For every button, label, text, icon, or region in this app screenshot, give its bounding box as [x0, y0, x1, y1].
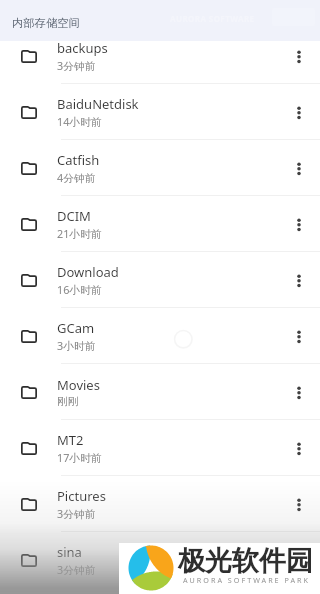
staticText: MT2 [57, 431, 84, 449]
button[interactable]: Catfish [0, 140, 320, 196]
staticText: Movies [57, 376, 100, 394]
button[interactable]: BaiduNetdisk [0, 84, 320, 140]
staticText: sina [57, 543, 82, 561]
button[interactable]: More options [277, 364, 320, 420]
staticText: 极光软件园 [178, 544, 313, 578]
button[interactable]: More options [277, 532, 320, 588]
button[interactable]: More options [277, 28, 320, 84]
button[interactable]: sina [0, 532, 320, 588]
button[interactable]: More options [277, 252, 320, 308]
staticText: 16小时前 [57, 282, 102, 297]
button[interactable]: More options [277, 84, 320, 140]
staticText: AURORA SOFTWARE PARK [183, 575, 310, 585]
staticText: 3小时前 [57, 338, 96, 353]
staticText: 4分钟前 [57, 170, 96, 185]
staticText: DCIM [57, 207, 91, 225]
staticText: GCam [57, 319, 95, 337]
button[interactable]: backups [0, 28, 320, 84]
button[interactable]: Download [0, 252, 320, 308]
staticText: 3分钟前 [57, 506, 96, 521]
button[interactable]: More options [277, 420, 320, 476]
button[interactable]: DCIM [0, 196, 320, 252]
button[interactable]: Movies [0, 364, 320, 420]
staticText: 内部存储空间 [12, 16, 80, 30]
button[interactable]: GCam [0, 308, 320, 364]
button[interactable]: More options [277, 308, 320, 364]
staticText: 刚刚 [57, 395, 79, 409]
button[interactable]: More options [277, 476, 320, 532]
staticText: BaiduNetdisk [57, 95, 139, 113]
button[interactable]: More options [277, 196, 320, 252]
staticText: backups [57, 39, 108, 57]
button[interactable]: Pictures [0, 476, 320, 532]
staticText: 3分钟前 [57, 562, 96, 577]
staticText: 21小时前 [57, 226, 102, 241]
button[interactable]: MT2 [0, 420, 320, 476]
button[interactable]: More options [277, 140, 320, 196]
staticText: 3分钟前 [57, 58, 96, 73]
staticText: Pictures [57, 487, 106, 505]
staticText: 14小时前 [57, 114, 102, 129]
staticText: Download [57, 263, 119, 281]
staticText: Catfish [57, 151, 100, 169]
staticText: 17小时前 [57, 450, 102, 465]
